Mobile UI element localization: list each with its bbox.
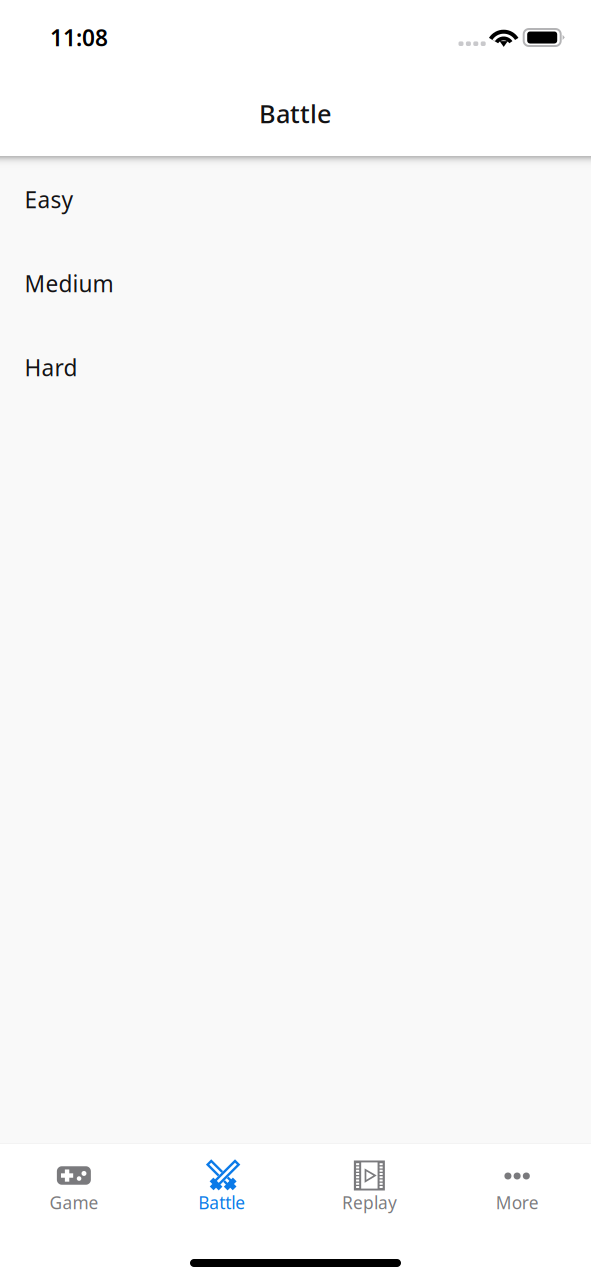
staticText: Game (49, 1191, 98, 1214)
button[interactable]: Medium (0, 240, 591, 324)
button[interactable]: Battle (148, 1144, 296, 1210)
button[interactable]: Replay (295, 1144, 443, 1210)
staticText: Battle (259, 97, 332, 130)
button[interactable]: Easy (0, 156, 591, 240)
staticText: More (496, 1191, 539, 1214)
staticText: Battle (198, 1191, 245, 1214)
button[interactable]: More (443, 1144, 591, 1210)
staticText: 11:08 (50, 22, 108, 52)
staticText: Easy (25, 184, 74, 214)
staticText: Hard (25, 352, 78, 382)
button[interactable]: Game (0, 1144, 148, 1210)
staticText: Replay (342, 1191, 397, 1214)
button[interactable]: Hard (0, 324, 591, 408)
staticText: Medium (25, 268, 114, 298)
